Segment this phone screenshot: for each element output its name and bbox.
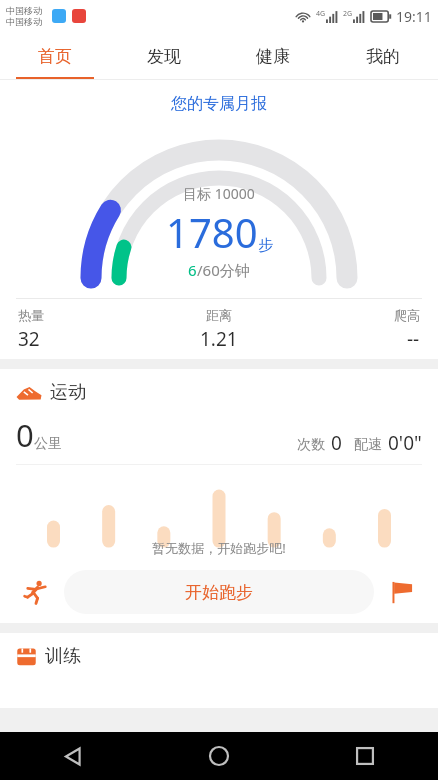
staticText: 1.21 xyxy=(200,326,238,352)
button[interactable]: 距离 xyxy=(152,307,286,352)
staticText: -- xyxy=(407,326,420,352)
staticText: 爬高 xyxy=(394,307,420,323)
button[interactable]: Goal flag xyxy=(380,570,424,614)
button[interactable]: 我的 xyxy=(328,32,438,80)
button[interactable]: 训练 xyxy=(16,645,422,668)
button[interactable]: 您的专属月报 xyxy=(171,94,267,114)
staticText: 0'0" xyxy=(388,430,422,456)
staticText: 19:11 xyxy=(396,7,432,26)
button[interactable]: 发现 xyxy=(109,32,218,80)
staticText: 训练 xyxy=(45,645,81,668)
staticText: 发现 xyxy=(147,46,181,67)
staticText: 0 xyxy=(331,430,342,456)
button[interactable]: Recent apps xyxy=(292,732,438,780)
button[interactable]: Running activity xyxy=(14,570,58,614)
staticText: 中国移动 xyxy=(6,5,42,16)
staticText: 1780 xyxy=(166,205,258,259)
staticText: 公里 xyxy=(34,435,62,453)
button[interactable]: Back xyxy=(0,732,146,780)
button[interactable]: 首页 xyxy=(0,32,109,80)
button[interactable]: 爬高 xyxy=(286,307,420,352)
staticText: 热量 xyxy=(18,307,44,323)
staticText: 32 xyxy=(18,326,40,352)
staticText: 我的 xyxy=(366,46,400,67)
button[interactable]: 开始跑步 xyxy=(64,570,374,614)
staticText: 开始跑步 xyxy=(185,582,253,603)
staticText: 步 xyxy=(258,236,273,255)
staticText: 2G xyxy=(343,9,353,19)
staticText: 6 xyxy=(188,260,197,280)
staticText: 距离 xyxy=(206,307,232,323)
staticText: 首页 xyxy=(38,46,72,67)
staticText: 配速 xyxy=(354,436,382,454)
staticText: 目标 10000 xyxy=(183,184,255,203)
button[interactable]: 运动 xyxy=(16,381,422,404)
staticText: /60分钟 xyxy=(197,260,250,280)
staticText: 运动 xyxy=(50,381,86,404)
staticText: 4G xyxy=(316,9,326,19)
staticText: 健康 xyxy=(256,46,290,67)
staticText: 暂无数据，开始跑步吧! xyxy=(152,539,286,557)
staticText: 次数 xyxy=(297,436,325,454)
button[interactable]: 健康 xyxy=(218,32,328,80)
button[interactable]: Home xyxy=(146,732,292,780)
staticText: 中国移动 xyxy=(6,16,42,27)
staticText: 0 xyxy=(16,414,34,456)
button[interactable]: 热量 xyxy=(18,307,152,352)
